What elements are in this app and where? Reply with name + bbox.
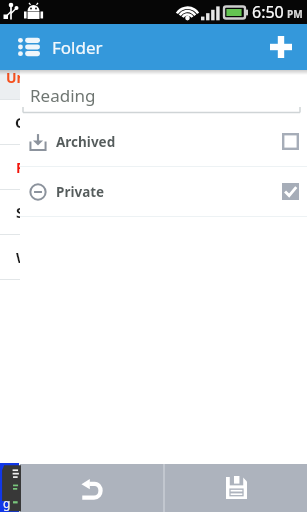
- button[interactable]: Add folder: [254, 24, 307, 70]
- button[interactable]: Save: [165, 464, 307, 512]
- button[interactable]: Archived: [20, 117, 307, 166]
- staticText: Folder: [52, 36, 103, 59]
- button[interactable]: Unfiled: [0, 55, 307, 100]
- button[interactable]: Science: [0, 190, 307, 235]
- staticText: Science: [16, 203, 69, 222]
- staticText: Politics: [16, 158, 67, 177]
- staticText: Private: [56, 183, 105, 201]
- button[interactable]: Undo: [20, 464, 163, 512]
- staticText: Gadgets: [15, 113, 73, 132]
- staticText: Archived: [56, 133, 116, 151]
- button[interactable]: Politics: [0, 145, 307, 190]
- button[interactable]: Private: [20, 167, 307, 216]
- staticText: PM: [287, 7, 303, 21]
- staticText: g: [3, 495, 11, 511]
- staticText: Unfiled: [6, 68, 57, 87]
- button[interactable]: Reading: [20, 70, 307, 115]
- staticText: 6:50: [252, 1, 284, 23]
- button[interactable]: Writing: [0, 235, 307, 280]
- button[interactable]: Gadgets: [0, 100, 307, 145]
- staticText: Writing: [16, 248, 69, 267]
- button[interactable]: Folder: [0, 24, 113, 70]
- staticText: Reading: [30, 84, 96, 107]
